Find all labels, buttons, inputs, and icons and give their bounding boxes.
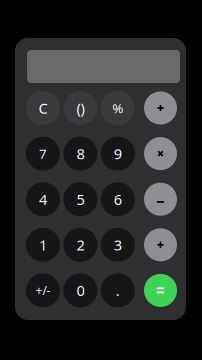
button[interactable]: (): [63, 91, 97, 125]
button[interactable]: %: [101, 91, 135, 125]
staticText: %: [112, 99, 123, 117]
button[interactable]: 3: [101, 228, 135, 262]
staticText: 3: [114, 235, 122, 255]
button[interactable]: 7: [26, 137, 60, 171]
staticText: 8: [76, 144, 84, 163]
button[interactable]: Add: [144, 91, 177, 124]
staticText: (): [76, 98, 84, 118]
button[interactable]: Add: [144, 228, 177, 261]
button[interactable]: 2: [63, 228, 97, 262]
staticText: 1: [39, 235, 47, 255]
staticText: 0: [76, 281, 84, 300]
button[interactable]: 0: [63, 273, 97, 307]
staticText: +/-: [35, 282, 50, 298]
button[interactable]: Subtract: [144, 183, 177, 216]
staticText: 9: [114, 144, 122, 163]
staticText: 4: [39, 189, 47, 209]
staticText: 5: [76, 189, 84, 209]
staticText: 2: [76, 235, 84, 255]
button[interactable]: Equals: [144, 274, 177, 307]
button[interactable]: Multiply: [144, 137, 177, 170]
staticText: C: [38, 98, 47, 118]
button[interactable]: 5: [63, 182, 97, 216]
button[interactable]: +/-: [26, 273, 60, 307]
button[interactable]: 8: [63, 137, 97, 171]
staticText: .: [116, 281, 120, 300]
button[interactable]: 1: [26, 228, 60, 262]
button[interactable]: C: [26, 91, 60, 125]
staticText: 6: [114, 189, 122, 209]
button[interactable]: .: [101, 273, 135, 307]
button[interactable]: 9: [101, 137, 135, 171]
button[interactable]: 6: [101, 182, 135, 216]
staticText: 7: [39, 145, 47, 162]
button[interactable]: 4: [26, 182, 60, 216]
